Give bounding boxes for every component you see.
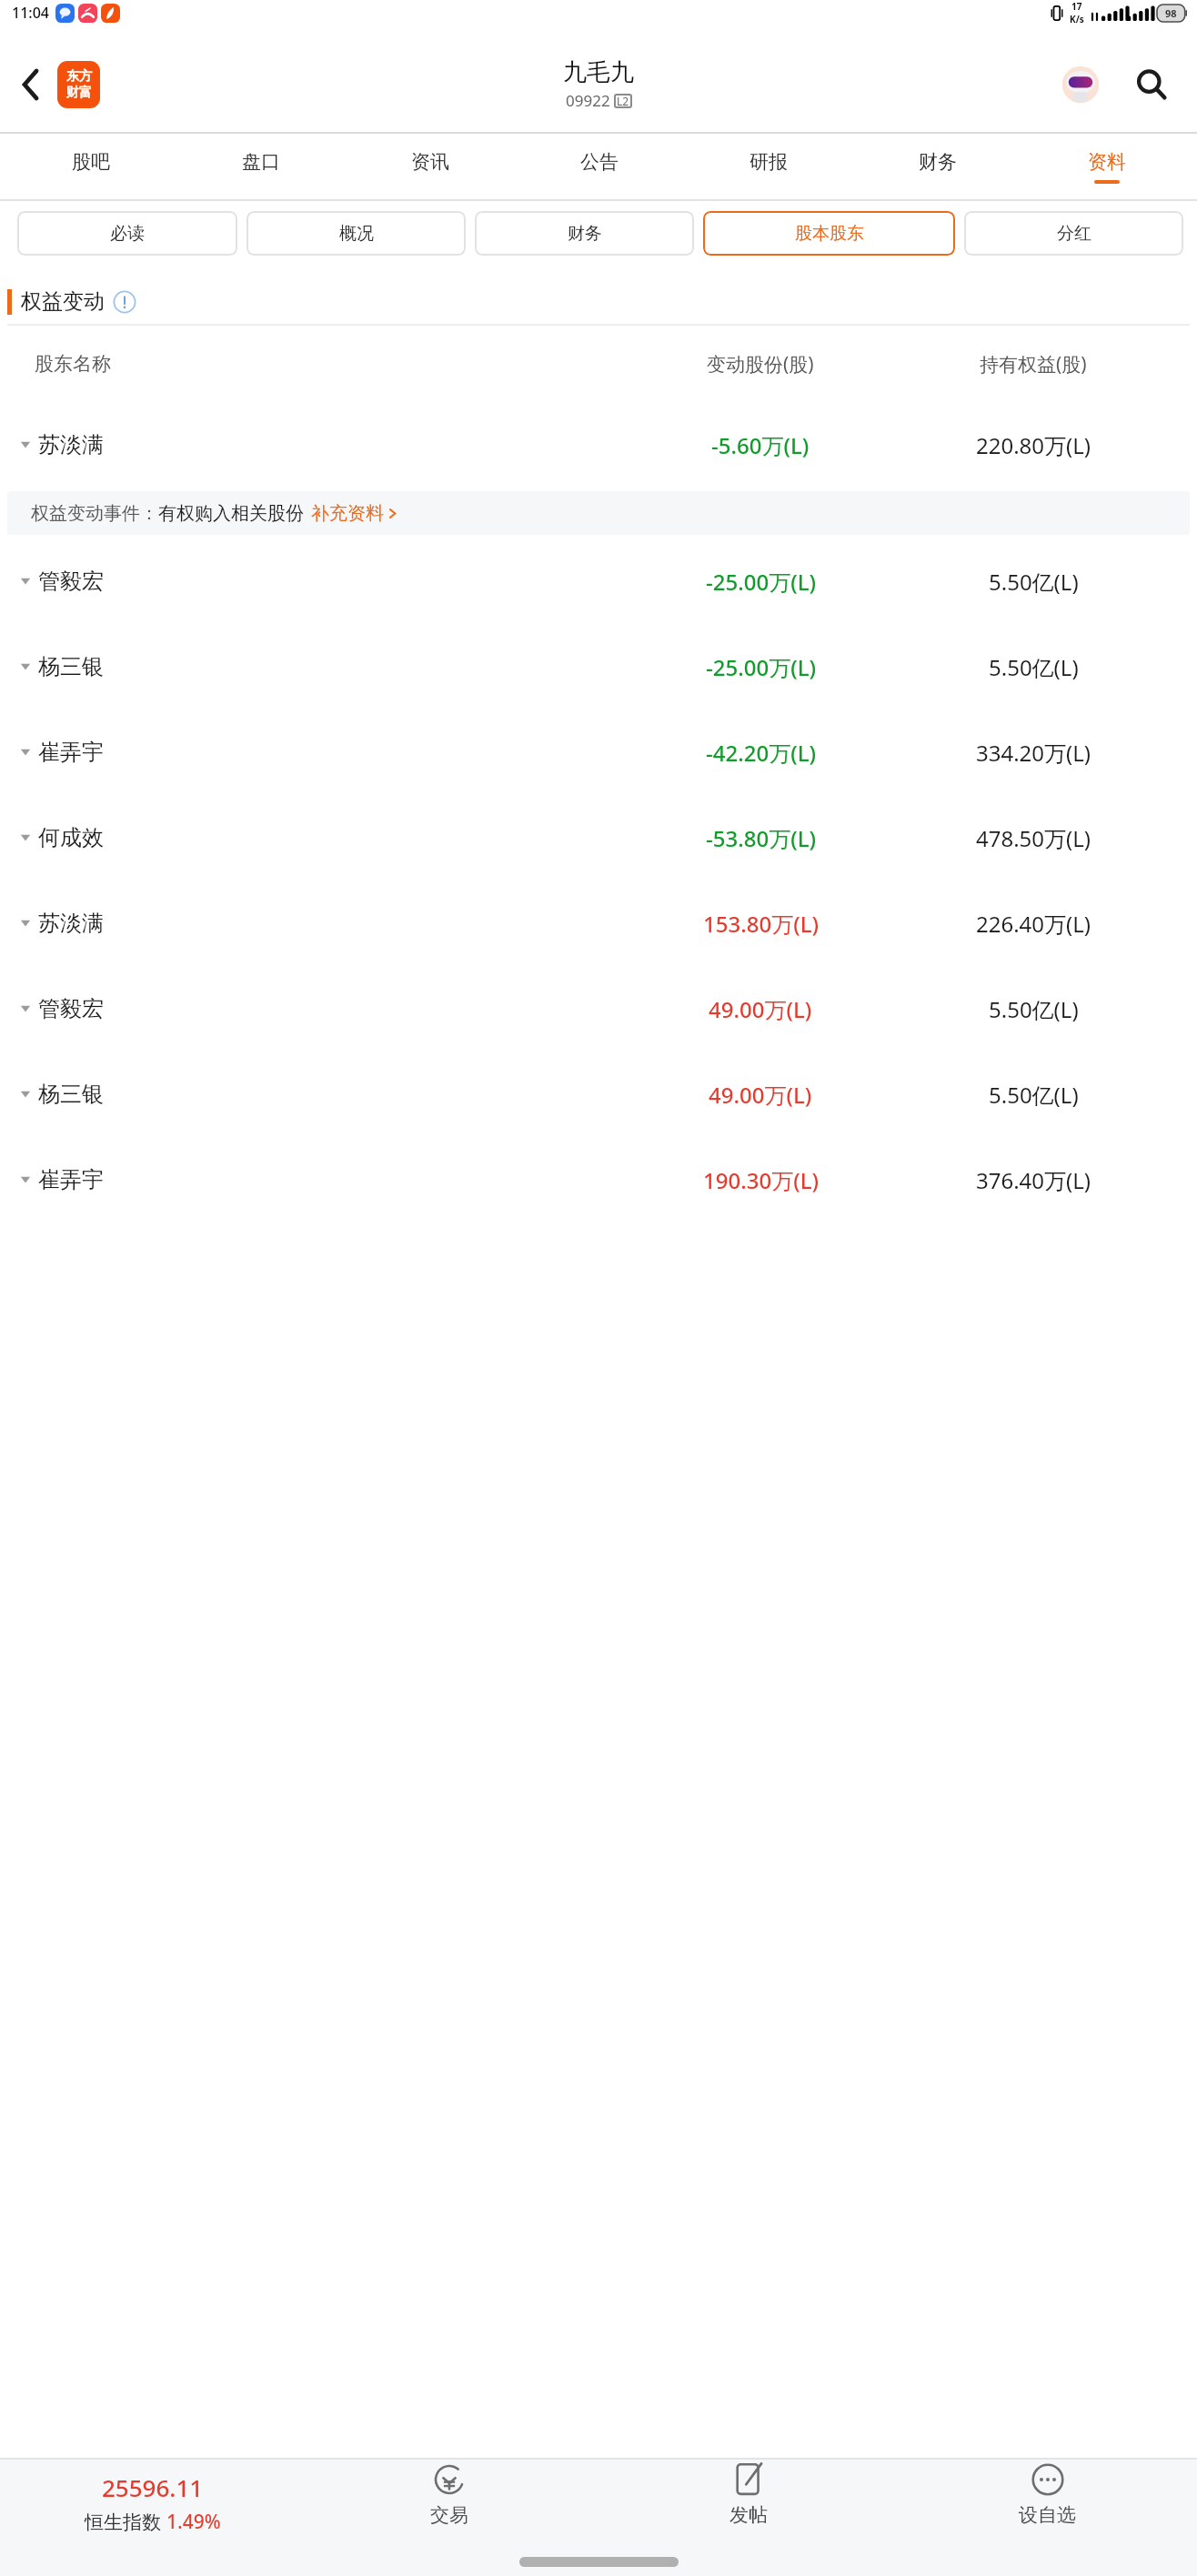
button[interactable]: 何成效 [0, 795, 1197, 880]
button[interactable]: 资讯 [346, 134, 515, 199]
staticText: 5.50亿(L) [989, 1080, 1079, 1110]
button[interactable]: 东方财富 [57, 61, 100, 108]
button[interactable]: 盘口 [176, 134, 346, 199]
staticText: 公告 [580, 150, 619, 174]
staticText: -42.20万(L) [706, 738, 816, 768]
button[interactable]: 财务 [475, 211, 694, 256]
staticText: -53.80万(L) [706, 823, 816, 853]
staticText: 226.40万(L) [976, 909, 1091, 939]
staticText: 必读 [110, 223, 145, 245]
button[interactable]: 管毅宏 [0, 538, 1197, 624]
staticText: 资讯 [411, 150, 449, 174]
staticText: 334.20万(L) [976, 738, 1091, 768]
staticText: 190.30万(L) [703, 1165, 819, 1195]
staticText: 49.00万(L) [709, 1080, 812, 1110]
staticText: L2 [617, 94, 629, 108]
staticText: 权益变动事件： [31, 502, 158, 525]
button[interactable]: 25596.11 [5, 2471, 299, 2535]
staticText: 98 [1165, 6, 1177, 20]
staticText: -25.00万(L) [706, 652, 816, 682]
button[interactable]: 发帖 [598, 2460, 898, 2547]
staticText: 权益变动 [21, 288, 105, 315]
staticText: -25.00万(L) [706, 567, 816, 597]
staticText: K/s [1070, 13, 1084, 25]
staticText: 补充资料 [311, 502, 384, 525]
staticText: 崔弄宇 [38, 1166, 104, 1193]
staticText: 1.49% [166, 2509, 221, 2535]
staticText: 49.00万(L) [709, 994, 812, 1024]
staticText: 概况 [339, 223, 374, 245]
button[interactable]: 财务 [853, 134, 1022, 199]
button[interactable]: Back [5, 59, 56, 110]
button[interactable]: 概况 [246, 211, 466, 256]
staticText: 财务 [568, 223, 602, 245]
staticText: 何成效 [38, 824, 104, 851]
staticText: -5.60万(L) [711, 430, 810, 460]
button[interactable]: 杨三银 [0, 624, 1197, 709]
staticText: 管毅宏 [38, 995, 104, 1022]
staticText: 220.80万(L) [976, 430, 1091, 460]
staticText: 5.50亿(L) [989, 652, 1079, 682]
staticText: 财富 [66, 85, 92, 101]
staticText: 25596.11 [102, 2471, 204, 2503]
staticText: 盘口 [242, 150, 280, 174]
button[interactable]: 崔弄宇 [0, 1137, 1197, 1223]
staticText: 苏淡满 [38, 910, 104, 937]
button[interactable]: 分红 [964, 211, 1183, 256]
button[interactable]: 说明 [112, 289, 137, 315]
button[interactable]: 股本股东 [703, 211, 955, 256]
button[interactable]: 杨三银 [0, 1052, 1197, 1137]
staticText: 崔弄宇 [38, 739, 104, 766]
staticText: 持有权益(股) [980, 351, 1087, 377]
staticText: 研报 [749, 150, 788, 174]
staticText: 杨三银 [38, 1081, 104, 1108]
button[interactable]: 权益变动事件： [7, 491, 1190, 535]
staticText: 东方 [66, 68, 92, 85]
staticText: 有权购入相关股份 [158, 502, 304, 525]
button[interactable]: 必读 [17, 211, 237, 256]
staticText: 376.40万(L) [976, 1165, 1091, 1195]
staticText: 恒生指数 [85, 2509, 166, 2535]
button[interactable]: 交易 [299, 2460, 598, 2547]
staticText: 设自选 [1019, 2503, 1076, 2527]
staticText: 变动股份(股) [707, 351, 814, 377]
staticText: 478.50万(L) [976, 823, 1091, 853]
staticText: 资料 [1088, 150, 1126, 174]
staticText: 09922 [566, 90, 610, 111]
staticText: 财务 [919, 150, 957, 174]
staticText: 股本股东 [795, 223, 864, 245]
staticText: 153.80万(L) [703, 909, 819, 939]
staticText: 17 [1071, 0, 1082, 13]
staticText: 交易 [430, 2503, 468, 2527]
button[interactable]: 资料 [1022, 134, 1192, 199]
staticText: 杨三银 [38, 653, 104, 680]
button[interactable]: 苏淡满 [0, 880, 1197, 966]
button[interactable]: 设自选 [898, 2460, 1197, 2547]
button[interactable]: 公告 [515, 134, 684, 199]
staticText: 5.50亿(L) [989, 994, 1079, 1024]
button[interactable]: 研报 [684, 134, 853, 199]
staticText: 11:04 [12, 3, 49, 23]
staticText: 九毛九 [563, 57, 634, 87]
button[interactable]: 崔弄宇 [0, 709, 1197, 795]
staticText: 股东名称 [35, 352, 111, 376]
button[interactable]: 股吧 [5, 134, 176, 199]
staticText: 管毅宏 [38, 568, 104, 595]
button[interactable]: 管毅宏 [0, 966, 1197, 1052]
button[interactable]: Search [1126, 59, 1177, 110]
staticText: 苏淡满 [38, 431, 104, 458]
button[interactable]: 苏淡满 [0, 402, 1197, 488]
button[interactable]: AI assistant [1059, 63, 1102, 106]
staticText: 股吧 [72, 150, 110, 174]
staticText: 5.50亿(L) [989, 567, 1079, 597]
staticText: 发帖 [729, 2503, 768, 2527]
staticText: 分红 [1057, 223, 1091, 245]
